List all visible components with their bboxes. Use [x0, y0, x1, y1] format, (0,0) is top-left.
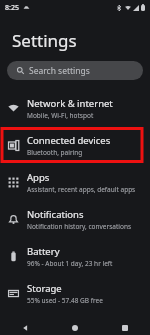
- button[interactable]: Recent apps: [100, 321, 150, 335]
- staticText: Network & internet: [27, 97, 113, 110]
- button[interactable]: Search settings: [7, 61, 143, 80]
- staticText: Storage: [27, 282, 62, 295]
- button[interactable]: Network & internet: [0, 90, 150, 127]
- button[interactable]: Apps: [0, 164, 150, 201]
- staticText: Mobile, Wi-Fi, hotspot: [27, 111, 94, 120]
- staticText: Notification history, conversations: [27, 222, 132, 231]
- staticText: Settings: [12, 29, 77, 52]
- button[interactable]: Storage: [0, 275, 150, 312]
- staticText: Battery: [27, 245, 60, 258]
- staticText: Bluetooth, pairing: [27, 148, 83, 157]
- staticText: 55% used - 57.48 GB free: [27, 296, 103, 305]
- staticText: Connected devices: [27, 134, 111, 147]
- staticText: Assistant, recent apps, default apps: [27, 185, 136, 194]
- staticText: Notifications: [27, 208, 84, 221]
- button[interactable]: Notifications: [0, 201, 150, 238]
- staticText: Search settings: [29, 65, 90, 77]
- staticText: 8:25: [5, 3, 19, 13]
- staticText: 96% - About 1 day, 23 hr left: [27, 259, 113, 268]
- button[interactable]: Home: [50, 321, 100, 335]
- button[interactable]: Connected devices: [0, 127, 150, 164]
- button[interactable]: Back: [0, 321, 50, 335]
- staticText: Apps: [27, 171, 50, 184]
- button[interactable]: Battery: [0, 238, 150, 275]
